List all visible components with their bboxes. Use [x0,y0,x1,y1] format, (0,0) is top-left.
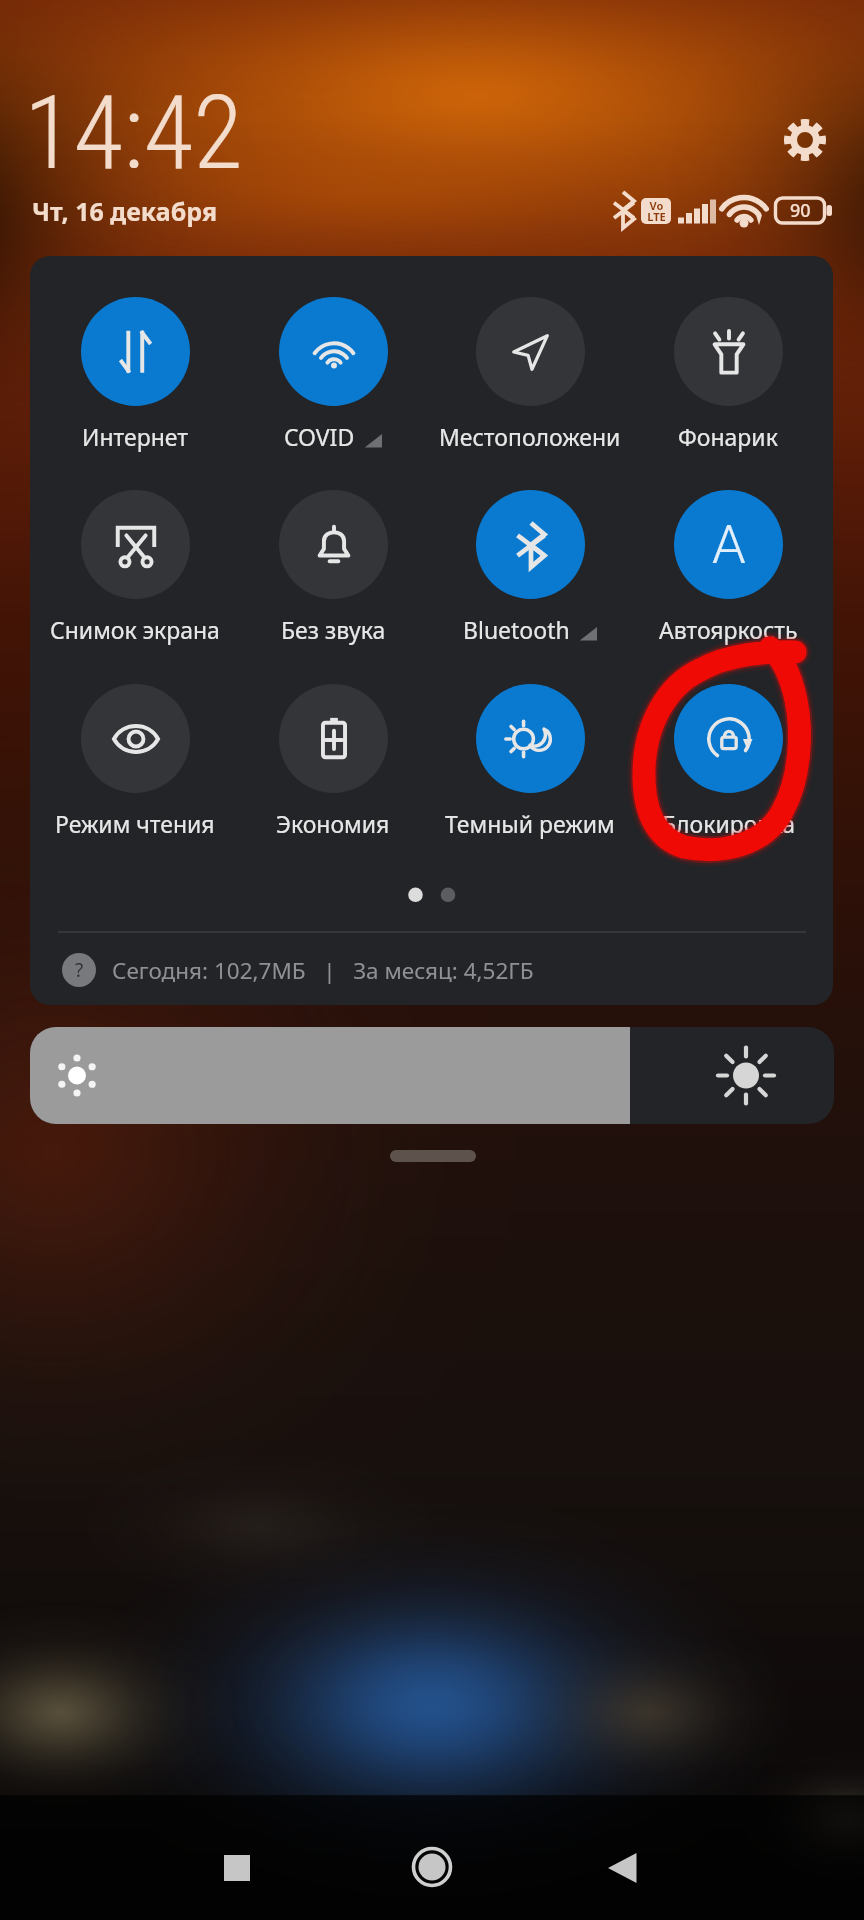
staticText: 14:42 [24,73,243,193]
button[interactable]: Back [593,1838,653,1898]
staticText: Режим чтения [55,808,215,839]
staticText: A [712,513,746,576]
staticText: Экономия [276,808,390,839]
button[interactable]: Снимок экрана [37,490,233,645]
staticText: ? [75,957,84,983]
button[interactable]: A [630,490,826,645]
staticText: Интернет [82,421,188,452]
button[interactable]: Recents [207,1838,267,1898]
button[interactable]: Bluetooth [432,490,628,645]
staticText: Фонарик [678,421,778,452]
button[interactable]: ? [62,948,534,992]
staticText: Темный режим [445,808,615,839]
button[interactable]: Режим чтения [37,684,233,839]
staticText: Сегодня: 102,7МБ | За месяц: 4,52ГБ [112,955,534,986]
staticText: Автояркость [659,614,798,645]
staticText: Bluetooth [463,614,570,645]
button[interactable]: Блокировка [630,684,826,839]
staticText: Блокировка [662,808,795,839]
button[interactable]: Темный режим [432,684,628,839]
button[interactable]: Settings [778,113,832,167]
button[interactable]: Местоположени [432,297,628,452]
button[interactable]: Home [402,1837,462,1897]
staticText: Без звука [281,614,386,645]
button[interactable]: Фонарик [630,297,826,452]
button[interactable]: Интернет [37,297,233,452]
staticText: Чт, 16 декабря [32,194,218,228]
button[interactable]: COVID [235,297,431,452]
staticText: Снимок экрана [50,614,220,645]
button[interactable]: Без звука [235,490,431,645]
button[interactable]: Brightness [30,1027,834,1124]
staticText: 90 [790,198,811,223]
staticText: Vo LTE [647,198,666,224]
button[interactable]: Экономия [235,684,431,839]
staticText: Местоположени [439,421,621,452]
staticText: COVID [284,421,355,452]
